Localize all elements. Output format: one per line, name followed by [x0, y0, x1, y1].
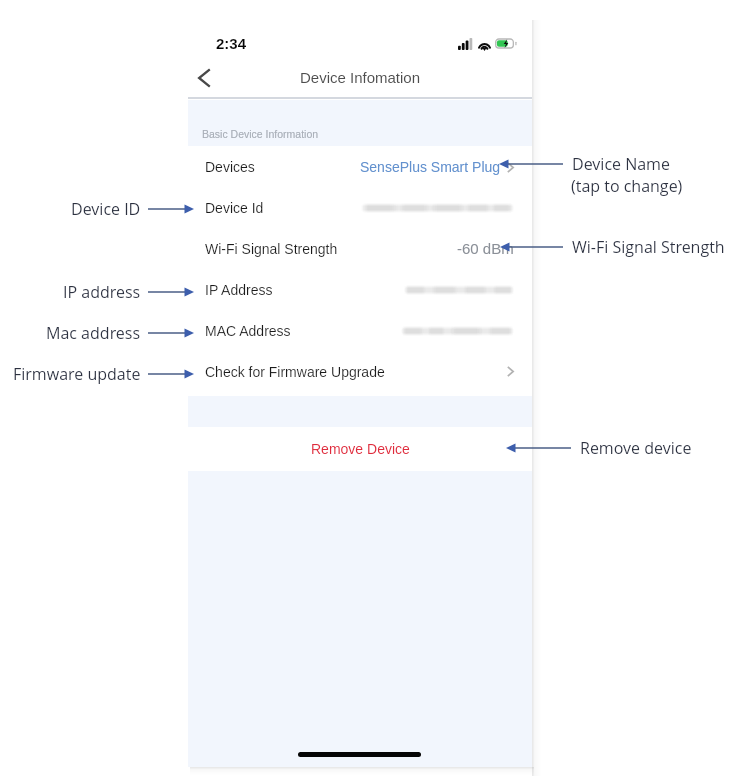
staticText: Remove device	[580, 437, 692, 459]
staticText: SensePlus Smart Plug	[360, 159, 501, 175]
staticText: IP address	[63, 281, 141, 303]
staticText: Device Infomation	[300, 69, 421, 86]
button[interactable]: Back	[190, 61, 224, 97]
staticText: Firmware update	[13, 363, 141, 385]
staticText: Remove Device	[311, 441, 410, 457]
staticText: Device Id	[205, 200, 264, 216]
staticText: MAC Address	[205, 323, 291, 339]
staticText: Device Name	[572, 153, 670, 175]
staticText: Devices	[205, 159, 255, 175]
staticText: -60 dBm	[457, 240, 514, 257]
staticText: Basic Device Information	[202, 128, 319, 140]
staticText: IP Address	[205, 282, 273, 298]
staticText: (tap to change)	[571, 175, 683, 197]
button[interactable]: Device Id	[188, 187, 532, 228]
button[interactable]: MAC Address	[188, 310, 532, 351]
button[interactable]: Devices	[188, 146, 532, 187]
staticText: Check for Firmware Upgrade	[205, 364, 385, 380]
staticText: Device ID	[71, 198, 141, 220]
button[interactable]: Check for Firmware Upgrade	[188, 351, 532, 392]
staticText: Wi-Fi Signal Strength	[205, 241, 338, 257]
button[interactable]: Wi-Fi Signal Strength	[188, 228, 532, 269]
staticText: Wi-Fi Signal Strength	[572, 236, 725, 258]
button[interactable]: Remove Device	[188, 427, 532, 471]
staticText: Mac address	[46, 322, 141, 344]
button[interactable]: IP Address	[188, 269, 532, 310]
staticText: 2:34	[216, 35, 247, 52]
